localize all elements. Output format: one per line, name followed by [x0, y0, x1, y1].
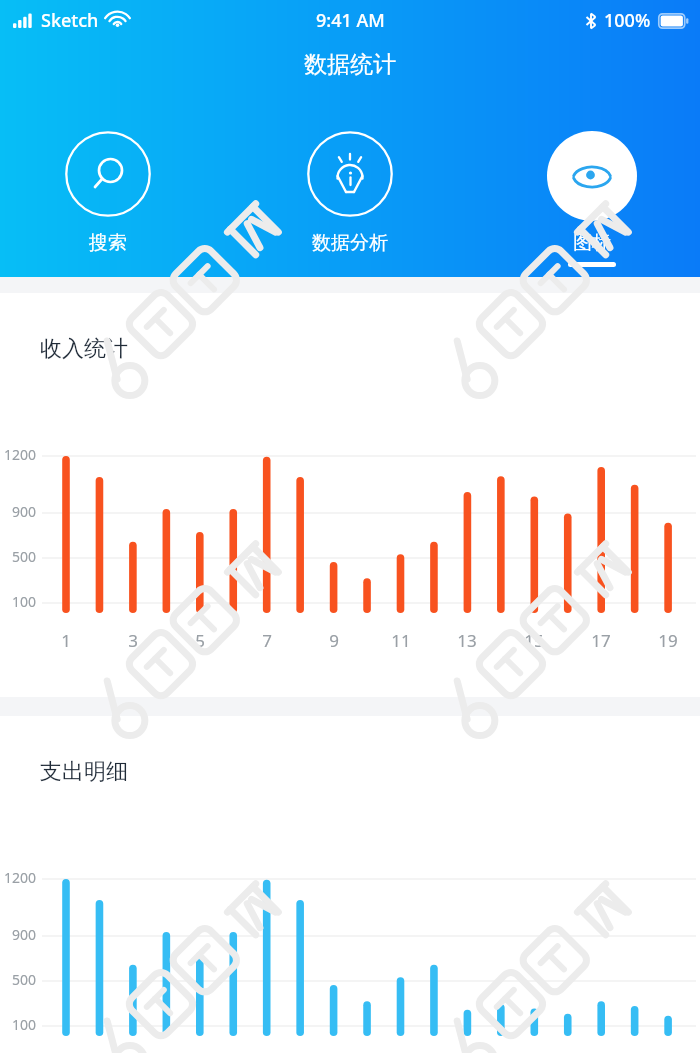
- staticText: 9: [322, 629, 346, 652]
- staticText: Sketch: [41, 8, 99, 33]
- staticText: 17: [589, 629, 613, 652]
- staticText: 9:41 AM: [316, 8, 385, 33]
- staticText: 500: [0, 970, 36, 989]
- staticText: 100: [0, 592, 36, 611]
- staticText: 搜索: [89, 231, 127, 255]
- staticText: 11: [389, 629, 413, 652]
- button[interactable]: Data analysis: [260, 131, 440, 255]
- staticText: 500: [0, 547, 36, 566]
- staticText: 100: [0, 1015, 36, 1034]
- staticText: 100%: [604, 8, 651, 33]
- staticText: 收入统计: [40, 335, 128, 363]
- button[interactable]: Charts: [502, 131, 682, 267]
- staticText: 1: [54, 629, 78, 652]
- staticText: 19: [656, 629, 680, 652]
- staticText: 7: [255, 629, 279, 652]
- staticText: 5: [188, 629, 212, 652]
- staticText: 数据分析: [312, 231, 388, 255]
- staticText: 1200: [0, 868, 36, 887]
- button[interactable]: 支出明细: [0, 716, 700, 1053]
- button[interactable]: Search: [18, 131, 198, 255]
- staticText: 支出明细: [40, 758, 128, 786]
- staticText: 15: [522, 629, 546, 652]
- staticText: 1200: [0, 445, 36, 464]
- staticText: 900: [0, 502, 36, 521]
- staticText: 13: [455, 629, 479, 652]
- staticText: 图标: [573, 231, 611, 255]
- staticText: 数据统计: [304, 50, 396, 79]
- staticText: 3: [121, 629, 145, 652]
- staticText: 900: [0, 925, 36, 944]
- button[interactable]: 收入统计: [0, 293, 700, 697]
